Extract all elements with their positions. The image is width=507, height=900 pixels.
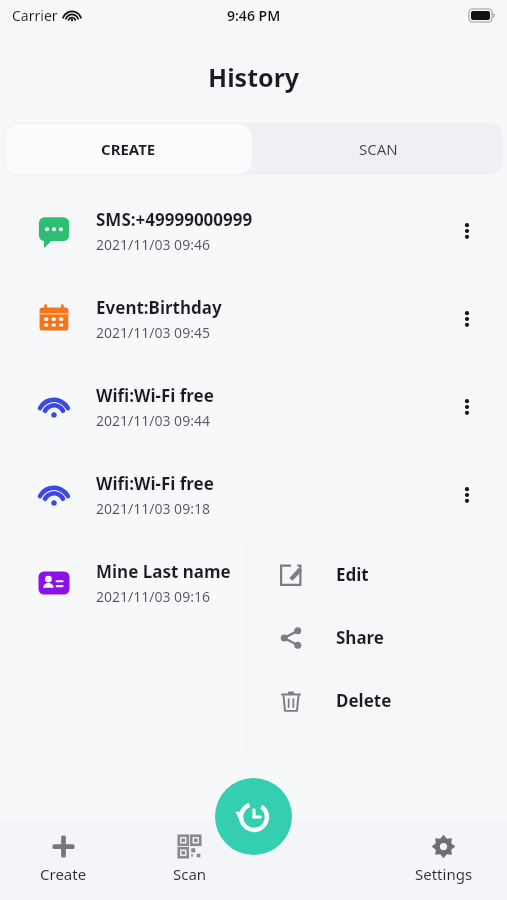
button[interactable]: Delete — [244, 669, 495, 732]
staticText: SCAN — [359, 139, 398, 159]
button[interactable]: History — [215, 778, 292, 855]
button[interactable]: More options — [445, 385, 489, 429]
staticText: Event:Birthday — [96, 296, 222, 319]
staticText: Mine Last name — [96, 560, 231, 583]
button[interactable]: CREATE — [5, 124, 252, 174]
button[interactable]: More options — [445, 209, 489, 253]
staticText: Share — [336, 626, 385, 649]
staticText: Scan — [173, 864, 207, 884]
button[interactable]: Mine Last name — [0, 539, 507, 627]
staticText: SMS:+49999000999 — [96, 208, 253, 231]
staticText: 9:46 PM — [227, 6, 281, 25]
staticText: 2021/11/03 09:16 — [96, 587, 210, 606]
button[interactable]: More options — [445, 473, 489, 517]
staticText: Delete — [336, 689, 392, 712]
button[interactable]: More options — [445, 297, 489, 341]
button[interactable]: Wifi:Wi-Fi free — [0, 363, 507, 451]
staticText: Wifi:Wi-Fi free — [96, 384, 214, 407]
button[interactable]: Create — [0, 818, 126, 900]
button[interactable]: Settings — [380, 818, 507, 900]
button[interactable]: Share — [244, 606, 495, 669]
button[interactable]: SCAN — [253, 123, 503, 175]
button[interactable]: Wifi:Wi-Fi free — [0, 451, 507, 539]
staticText: Carrier — [12, 6, 58, 25]
staticText: Create — [40, 864, 87, 884]
staticText: Wifi:Wi-Fi free — [96, 472, 214, 495]
button[interactable]: Edit — [244, 543, 495, 606]
staticText: Settings — [415, 864, 473, 884]
staticText: 2021/11/03 09:46 — [96, 235, 210, 254]
button[interactable]: Event:Birthday — [0, 275, 507, 363]
staticText: Edit — [336, 563, 369, 586]
staticText: 2021/11/03 09:18 — [96, 499, 210, 518]
staticText: 2021/11/03 09:44 — [96, 411, 210, 430]
staticText: CREATE — [101, 139, 156, 159]
staticText: 2021/11/03 09:45 — [96, 323, 210, 342]
button[interactable]: SMS:+49999000999 — [0, 187, 507, 275]
button[interactable]: Scan — [126, 818, 253, 900]
staticText: History — [208, 60, 300, 94]
